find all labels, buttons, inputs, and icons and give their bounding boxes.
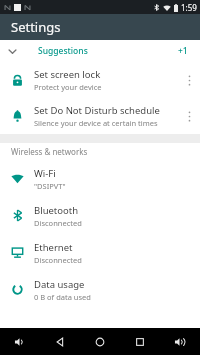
staticText: Protect your device <box>34 82 102 92</box>
button[interactable]: Set screen lock <box>0 62 200 98</box>
staticText: Set screen lock <box>34 68 101 81</box>
button[interactable]: Set Do Not Disturb schedule <box>0 98 200 134</box>
staticText: Bluetooth <box>34 204 79 217</box>
button[interactable]: Data usage <box>0 271 200 308</box>
staticText: Wi-Fi <box>34 167 56 180</box>
button[interactable]: Volume up <box>160 328 200 355</box>
staticText: 0 B of data used <box>34 292 91 302</box>
button[interactable]: More options <box>178 62 200 98</box>
staticText: Suggestions <box>38 45 88 57</box>
staticText: Disconnected <box>34 255 82 265</box>
staticText: 1:59 <box>181 2 197 13</box>
staticText: Ethernet <box>34 241 73 254</box>
staticText: +1 <box>178 45 188 57</box>
button[interactable]: Ethernet <box>0 234 200 271</box>
staticText: Silence your device at certain times <box>34 118 158 128</box>
staticText: "DSIPVT" <box>34 181 66 191</box>
staticText: Settings <box>11 18 61 36</box>
button[interactable]: More options <box>178 98 200 134</box>
button[interactable]: Recents <box>120 328 160 355</box>
button[interactable]: Back <box>40 328 80 355</box>
staticText: Disconnected <box>34 218 82 228</box>
staticText: Wireless & networks <box>11 146 88 157</box>
button[interactable]: Suggestions <box>0 40 200 62</box>
button[interactable]: Wi-Fi <box>0 160 200 197</box>
staticText: Data usage <box>34 278 85 291</box>
staticText: Set Do Not Disturb schedule <box>34 104 160 117</box>
button[interactable]: Bluetooth <box>0 197 200 234</box>
button[interactable]: Volume down <box>0 328 40 355</box>
button[interactable]: Home <box>80 328 120 355</box>
